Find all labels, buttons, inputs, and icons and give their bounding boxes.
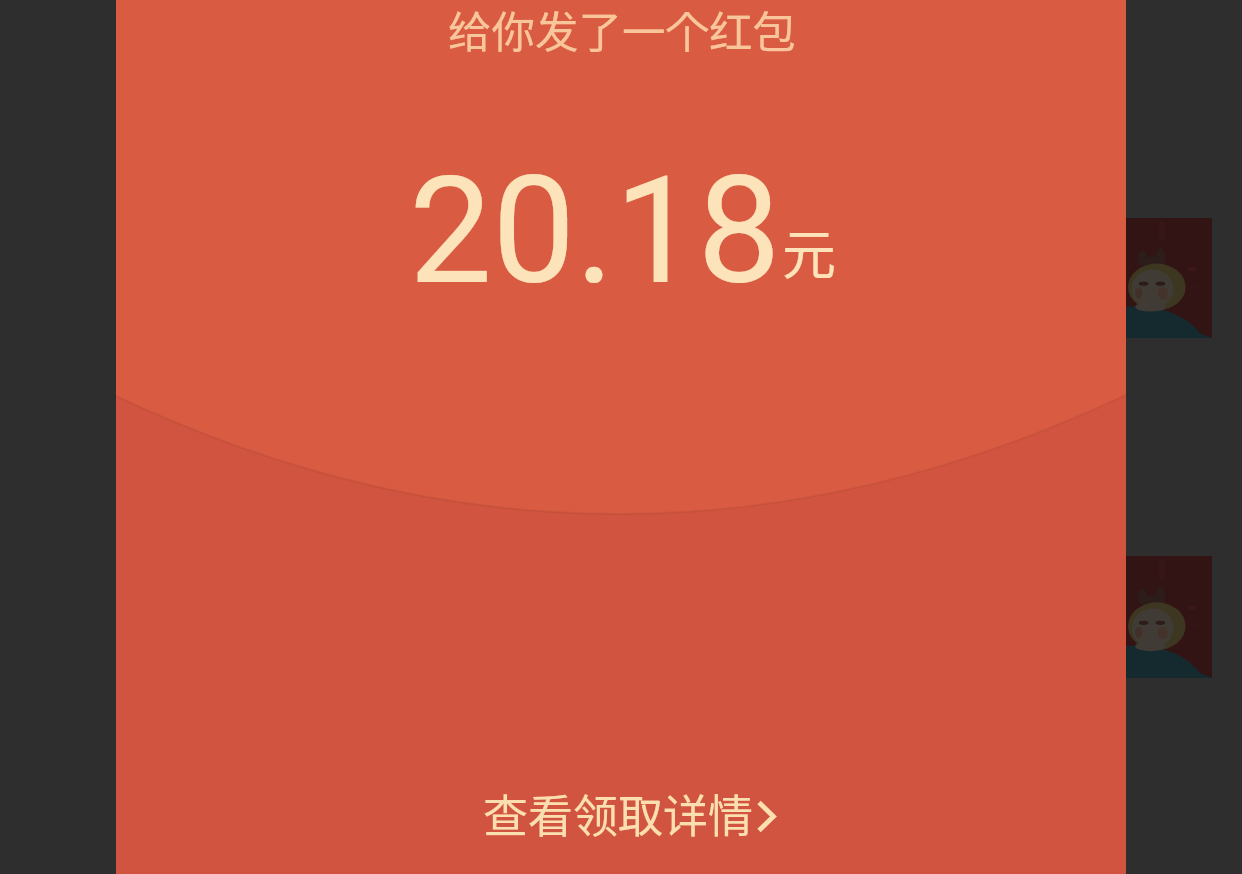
button[interactable]: 查看领取详情 xyxy=(483,781,778,846)
other: 查看领取详情 xyxy=(754,786,778,842)
button[interactable]: 红包 xyxy=(116,0,1126,874)
staticText: 查看领取详情 xyxy=(483,781,754,846)
staticText: 20.18 xyxy=(409,145,781,318)
staticText: 给你发了一个红包 xyxy=(437,0,807,61)
staticText: 元 xyxy=(782,212,836,290)
